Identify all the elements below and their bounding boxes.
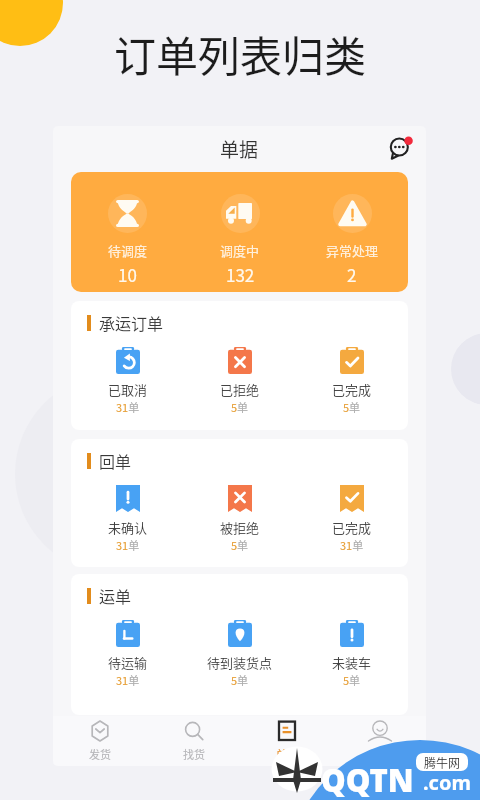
staticText: 我的 [369,746,391,762]
staticText: 运单 [99,584,132,607]
button[interactable]: 已完成 [296,347,408,415]
staticText: 待调度 [108,241,148,260]
button[interactable]: 找货 [147,721,240,762]
staticText: 5单 [231,537,249,553]
staticText: 132 [226,262,255,287]
button[interactable]: 待调度 [71,172,184,292]
button[interactable]: 已完成 [296,485,408,553]
staticText: 未确认 [108,518,148,537]
staticText: 5单 [343,672,361,688]
staticText: 调度中 [220,241,260,260]
staticText: .com [423,769,471,796]
button[interactable]: 待运输 [71,620,184,688]
staticText: 31单 [116,537,140,553]
button[interactable]: 我的 [333,721,426,762]
staticText: 已完成 [332,380,372,399]
staticText: 10 [118,262,137,287]
staticText: 未装车 [332,653,372,672]
staticText: 已完成 [332,518,372,537]
staticText: 31单 [116,399,140,415]
staticText: 承运订单 [99,311,164,334]
staticText: 31单 [340,537,364,553]
staticText: 腾牛网 [424,754,461,771]
staticText: 待到装货点 [207,653,273,672]
staticText: 5单 [231,399,249,415]
button[interactable]: 已取消 [71,347,184,415]
button[interactable]: 发货 [53,721,147,762]
button[interactable]: 已拒绝 [184,347,296,415]
staticText: 异常处理 [326,241,379,260]
staticText: 待运输 [108,653,148,672]
staticText: 发货 [89,746,111,762]
button[interactable]: 未装车 [296,620,408,688]
staticText: 5单 [343,399,361,415]
staticText: 单据 [276,746,298,762]
button[interactable]: 被拒绝 [184,485,296,553]
button[interactable]: 未确认 [71,485,184,553]
staticText: 回单 [99,449,132,472]
button[interactable]: Messages [387,133,415,161]
button[interactable]: 待到装货点 [184,620,296,688]
staticText: QQTN [321,759,414,800]
staticText: 单据 [220,135,259,163]
staticText: 已拒绝 [220,380,260,399]
staticText: 2 [347,262,357,287]
button[interactable]: 单据 [240,721,333,762]
staticText: 被拒绝 [220,518,260,537]
staticText: 31单 [116,672,140,688]
staticText: 已取消 [108,380,148,399]
staticText: 找货 [183,746,205,762]
staticText: 5单 [231,672,249,688]
button[interactable]: 异常处理 [296,172,408,292]
staticText: 订单列表归类 [0,23,480,84]
button[interactable]: 调度中 [184,172,296,292]
